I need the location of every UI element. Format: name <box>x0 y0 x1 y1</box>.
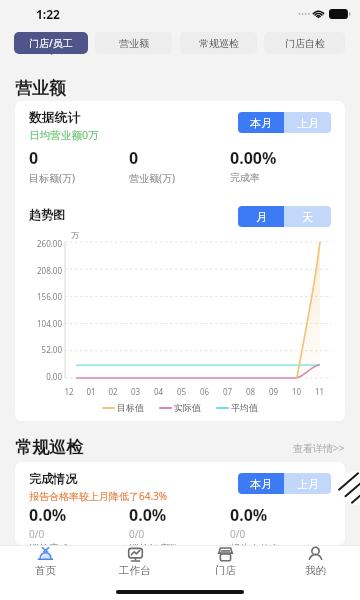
staticText: 0.0% <box>29 504 67 526</box>
staticText: 104.00 <box>29 318 62 329</box>
button[interactable]: 上月 <box>284 473 331 494</box>
staticText: 月 <box>256 210 267 224</box>
staticText: 完成情况 <box>29 471 77 486</box>
staticText: 首页 <box>35 564 56 577</box>
staticText: 工作台 <box>119 564 151 577</box>
staticText: 03 <box>124 386 147 397</box>
staticText: 01 <box>80 386 102 397</box>
staticText: 日均营业额0万 <box>29 128 99 142</box>
staticText: 目标值 <box>117 402 144 413</box>
button[interactable]: 天 <box>284 206 331 227</box>
button[interactable]: 本月 <box>238 112 284 133</box>
staticText: 本月 <box>250 477 272 491</box>
staticText: 08 <box>239 386 262 397</box>
staticText: 09 <box>262 386 285 397</box>
button[interactable]: 门店自检 <box>264 32 345 54</box>
staticText: 我的 <box>305 564 326 577</box>
staticText: 门店 <box>215 564 236 577</box>
staticText: 52.00 <box>29 344 62 355</box>
button[interactable]: 首页 <box>0 546 90 577</box>
staticText: 0 <box>29 147 39 169</box>
staticText: 巡检完成 <box>29 542 69 545</box>
staticText: 04 <box>147 386 170 397</box>
staticText: 0.00 <box>29 371 62 382</box>
staticText: 营业额 <box>119 37 149 50</box>
staticText: 0 <box>129 147 139 169</box>
staticText: 260.00 <box>29 238 62 249</box>
staticText: 门店/员工 <box>29 36 73 50</box>
staticText: 门店自检 <box>285 37 325 50</box>
staticText: 数据统计 <box>29 110 81 126</box>
staticText: 10 <box>285 386 308 397</box>
button[interactable]: 常规巡检 <box>180 32 257 54</box>
staticText: 报告合格率 <box>230 542 280 545</box>
staticText: 05 <box>170 386 193 397</box>
staticText: 0/0 <box>129 527 145 541</box>
staticText: 上月 <box>297 477 319 491</box>
button[interactable]: Menu <box>338 471 360 505</box>
staticText: 营业额(万) <box>129 171 175 185</box>
button[interactable]: 我的 <box>270 546 360 577</box>
button[interactable]: 本月 <box>238 473 284 494</box>
staticText: 常规巡检 <box>199 37 239 50</box>
staticText: 11 <box>308 386 331 397</box>
staticText: 0.00% <box>230 147 277 169</box>
staticText: 报告合格率较上月降低了64.3% <box>29 489 168 503</box>
staticText: 0.0% <box>129 504 167 526</box>
button[interactable]: 营业额 <box>95 32 172 54</box>
button[interactable]: 门店 <box>180 546 270 577</box>
staticText: 常规巡检 <box>15 437 83 458</box>
staticText: 上月 <box>297 116 319 130</box>
staticText: 营业额 <box>15 78 66 99</box>
staticText: 02 <box>102 386 124 397</box>
staticText: 06 <box>193 386 216 397</box>
staticText: 目标额(万) <box>29 171 75 185</box>
button[interactable]: 门店/员工 <box>14 32 88 54</box>
button[interactable]: 工作台 <box>90 546 180 577</box>
button[interactable]: 月 <box>238 206 284 227</box>
staticText: 趋势图 <box>29 207 238 222</box>
staticText: 天 <box>302 210 313 224</box>
staticText: 208.00 <box>29 265 62 276</box>
staticText: 巡检门店数 <box>129 542 179 545</box>
staticText: 07 <box>216 386 239 397</box>
staticText: 平均值 <box>231 402 258 413</box>
staticText: 本月 <box>250 116 272 130</box>
staticText: 156.00 <box>29 291 62 302</box>
staticText: 0/0 <box>29 527 45 541</box>
staticText: 1:22 <box>36 6 60 22</box>
staticText: 万 <box>71 230 79 240</box>
staticText: 12 <box>58 386 80 397</box>
staticText: 0/0 <box>230 527 246 541</box>
button[interactable]: 查看详情>> <box>293 441 345 455</box>
staticText: 完成率 <box>230 171 260 184</box>
staticText: 0.0% <box>230 504 268 526</box>
staticText: 实际值 <box>174 402 201 413</box>
button[interactable]: 上月 <box>284 112 331 133</box>
